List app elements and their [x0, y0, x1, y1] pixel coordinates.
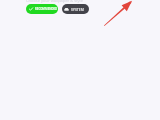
staticText: SYSTEM — [71, 7, 84, 12]
button[interactable]: SYSTEM — [62, 4, 89, 14]
other: Annotation arrow — [0, 0, 160, 120]
staticText: Choose your wallpaper & style — [26, 0, 83, 3]
button[interactable]: RECOMMENDED — [26, 4, 58, 14]
staticText: RECOMMENDED — [35, 7, 58, 11]
